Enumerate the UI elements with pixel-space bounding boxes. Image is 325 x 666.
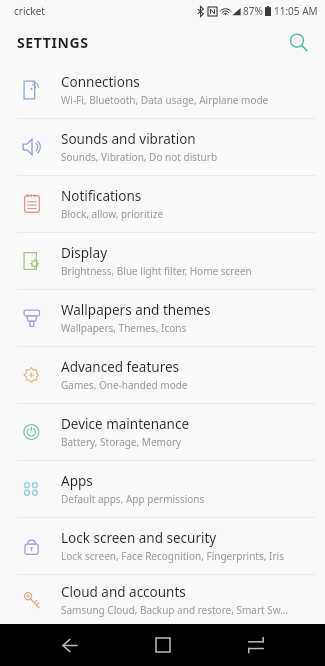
button[interactable]: Apps bbox=[0, 461, 325, 517]
staticText: Notifications bbox=[61, 187, 142, 205]
staticText: Advanced features bbox=[61, 358, 180, 376]
staticText: 11:05 AM bbox=[274, 4, 318, 18]
button[interactable]: Display bbox=[0, 233, 325, 289]
staticText: Wallpapers, Themes, Icons bbox=[61, 321, 187, 335]
button[interactable]: Back bbox=[45, 624, 93, 666]
button[interactable]: Sounds and vibration bbox=[0, 119, 325, 175]
staticText: Sounds, Vibration, Do not disturb bbox=[61, 150, 218, 164]
staticText: Display bbox=[61, 244, 108, 262]
button[interactable]: Connections bbox=[0, 62, 325, 118]
staticText: 87% bbox=[243, 4, 263, 18]
button[interactable]: Wallpapers and themes bbox=[0, 290, 325, 346]
button[interactable]: Device maintenance bbox=[0, 404, 325, 460]
staticText: cricket bbox=[14, 4, 45, 18]
staticText: Brightness, Blue light filter, Home scre… bbox=[61, 264, 252, 278]
staticText: Wallpapers and themes bbox=[61, 301, 211, 319]
button[interactable]: Lock screen and security bbox=[0, 518, 325, 574]
button[interactable]: Search bbox=[281, 25, 315, 59]
staticText: Apps bbox=[61, 472, 93, 490]
staticText: Connections bbox=[61, 73, 140, 91]
button[interactable]: Advanced features bbox=[0, 347, 325, 403]
staticText: Lock screen and security bbox=[61, 529, 217, 547]
staticText: SETTINGS bbox=[17, 33, 89, 52]
staticText: Cloud and accounts bbox=[61, 583, 186, 601]
staticText: Battery, Storage, Memory bbox=[61, 435, 182, 449]
button[interactable]: Notifications bbox=[0, 176, 325, 232]
staticText: Device maintenance bbox=[61, 415, 190, 433]
button[interactable]: Home bbox=[139, 624, 187, 666]
staticText: Sounds and vibration bbox=[61, 130, 196, 148]
staticText: Block, allow, prioritize bbox=[61, 207, 164, 221]
button[interactable]: Cloud and accounts bbox=[0, 575, 325, 624]
staticText: Games, One-handed mode bbox=[61, 378, 188, 392]
staticText: Default apps, App permissions bbox=[61, 492, 205, 506]
staticText: Samsung Cloud, Backup and restore, Smart… bbox=[61, 603, 289, 617]
staticText: Lock screen, Face Recognition, Fingerpri… bbox=[61, 549, 284, 563]
staticText: Wi-Fi, Bluetooth, Data usage, Airplane m… bbox=[61, 93, 269, 107]
button[interactable]: Recents bbox=[232, 624, 280, 666]
